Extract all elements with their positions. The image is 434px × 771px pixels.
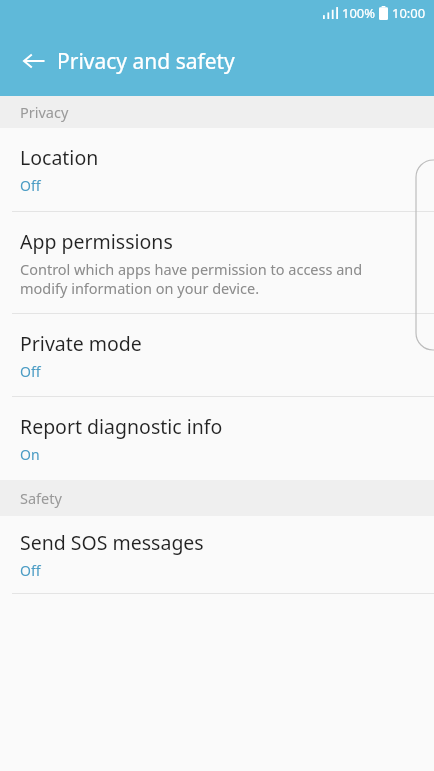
- staticText: 10:00: [392, 4, 426, 22]
- button[interactable]: Location: [0, 128, 434, 211]
- staticText: Safety: [20, 488, 62, 508]
- staticText: Privacy and safety: [57, 47, 235, 76]
- staticText: Off: [20, 561, 41, 580]
- button[interactable]: Back: [10, 37, 58, 85]
- staticText: On: [20, 445, 40, 464]
- button[interactable]: Report diagnostic info: [0, 397, 434, 480]
- button[interactable]: App permissions: [0, 212, 434, 313]
- staticText: Privacy: [20, 102, 69, 122]
- button[interactable]: Private mode: [0, 314, 434, 396]
- staticText: Report diagnostic info: [20, 413, 223, 440]
- staticText: Off: [20, 362, 41, 381]
- staticText: Send SOS messages: [20, 529, 204, 556]
- button[interactable]: Send SOS messages: [0, 516, 434, 593]
- staticText: Off: [20, 176, 41, 195]
- staticText: 100%: [342, 4, 376, 22]
- staticText: Location: [20, 144, 99, 171]
- staticText: App permissions: [20, 228, 173, 255]
- staticText: Private mode: [20, 330, 142, 357]
- staticText: Control which apps have permission to ac…: [20, 259, 410, 298]
